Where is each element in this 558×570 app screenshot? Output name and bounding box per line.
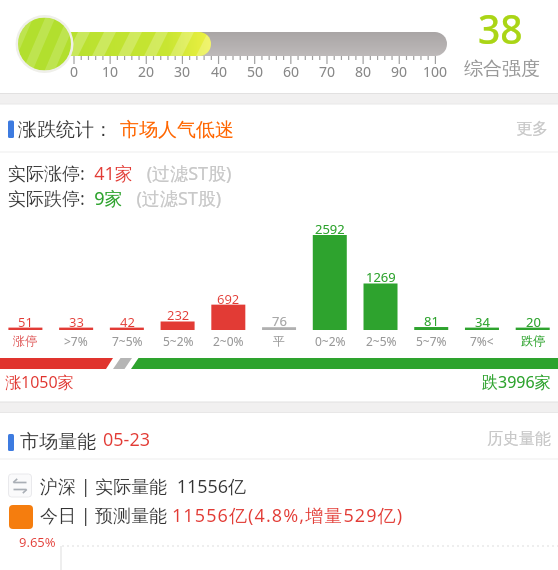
staticText: 平 [273,333,285,348]
staticText: 70 [319,62,336,81]
staticText: 7%< [470,333,494,349]
staticText: 05-23 [103,427,150,452]
staticText: 2592 [315,220,345,238]
staticText: 综合强度 [464,57,540,81]
staticText: 2~5% [366,333,397,349]
staticText: 涨停 [13,333,37,348]
staticText: 沪深 | 实际量能 11556亿 [40,474,247,499]
staticText: 20 [526,313,541,331]
staticText: 实际涨停: 41家 (过滤ST股) [8,161,232,186]
button[interactable]: 历史量能 [0,0,64,20]
staticText: 跌停 [521,333,545,348]
staticText: 2~0% [213,333,244,349]
staticText: 实际跌停: 9家 (过滤ST股) [8,186,222,211]
staticText: 7~5% [112,333,143,349]
staticText: 涨1050家 [5,371,74,393]
staticText: 50 [247,62,264,81]
staticText: 38 [478,2,523,55]
staticText: 5~2% [163,333,194,349]
staticText: >7% [64,333,88,349]
staticText: 90 [391,62,408,81]
staticText: 5~7% [416,333,447,349]
staticText: 1269 [366,268,396,286]
staticText: 跌3996家 [482,371,551,393]
button[interactable]: 涨跌统计： [0,0,95,24]
staticText: 60 [283,62,300,81]
staticText: 市场人气低迷 [120,118,234,142]
staticText: 33 [69,313,84,331]
staticText: 0~2% [315,333,346,349]
staticText: 51 [18,313,33,331]
staticText: 80 [355,62,372,81]
button[interactable]: 市场量能 [0,0,76,24]
staticText: 40 [211,62,228,81]
staticText: 20 [138,62,155,81]
staticText: 692 [217,290,240,308]
staticText: 100 [423,62,448,81]
staticText: 76 [272,312,287,330]
staticText: 今日 | 预测量能 11556亿(4.8%,增量529亿) [40,503,404,528]
staticText: 10 [102,62,119,81]
staticText: 30 [174,62,191,81]
staticText: 9.65% [19,533,56,551]
staticText: 34 [475,313,490,331]
staticText: 81 [424,312,439,330]
staticText: 232 [167,306,190,324]
staticText: 0 [70,62,79,81]
staticText: 42 [120,313,135,331]
